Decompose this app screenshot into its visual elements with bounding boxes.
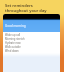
- button[interactable]: Hydrate now: [3, 41, 60, 45]
- staticText: Walk outside: [5, 45, 21, 49]
- staticText: Morning stretch: [5, 37, 25, 41]
- staticText: Hydrate now: [5, 41, 21, 45]
- staticText: throughout your day: [5, 8, 47, 13]
- button[interactable]: Wake up call: [3, 33, 60, 37]
- button[interactable]: Wind down: [3, 49, 60, 53]
- staticText: Wind down: [5, 49, 19, 53]
- staticText: Wake up call: [5, 33, 21, 37]
- button[interactable]: Morning stretch: [3, 37, 60, 41]
- button[interactable]: Walk outside: [3, 45, 60, 49]
- staticText: Set reminders: [5, 3, 33, 8]
- staticText: Good morning: [5, 24, 26, 28]
